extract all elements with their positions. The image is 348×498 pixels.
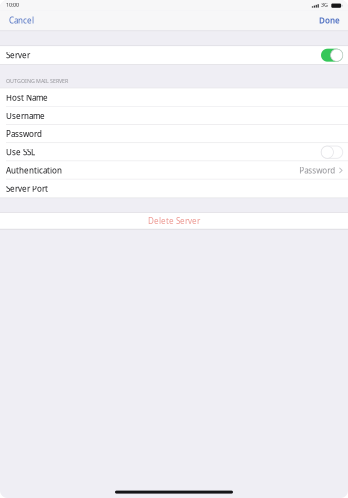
button[interactable]: Username <box>0 107 348 125</box>
staticText: Server Port <box>6 183 48 194</box>
staticText: Host Name <box>6 92 48 103</box>
staticText: Password <box>6 129 42 139</box>
staticText: 3G <box>321 1 328 8</box>
staticText: Server <box>6 50 30 60</box>
staticText: OUTGOING MAIL SERVER <box>6 77 68 84</box>
button[interactable]: Done <box>311 10 348 30</box>
button[interactable]: Delete Server <box>0 213 348 229</box>
button[interactable]: Password <box>0 125 348 143</box>
button[interactable]: Authentication <box>0 161 348 179</box>
staticText: Username <box>6 110 45 121</box>
staticText: 10:00 <box>6 1 19 8</box>
staticText: Cancel <box>9 15 34 26</box>
staticText: Password <box>299 165 335 176</box>
button[interactable]: Server Port <box>0 179 348 198</box>
staticText: Delete Server <box>148 216 200 226</box>
button[interactable]: Cancel <box>0 10 42 30</box>
button[interactable]: Server <box>0 46 348 64</box>
staticText: Authentication <box>6 165 62 176</box>
staticText: Use SSL <box>6 147 35 157</box>
staticText: Done <box>319 15 340 26</box>
button[interactable]: Host Name <box>0 88 348 107</box>
button[interactable]: Use SSL <box>0 143 348 161</box>
